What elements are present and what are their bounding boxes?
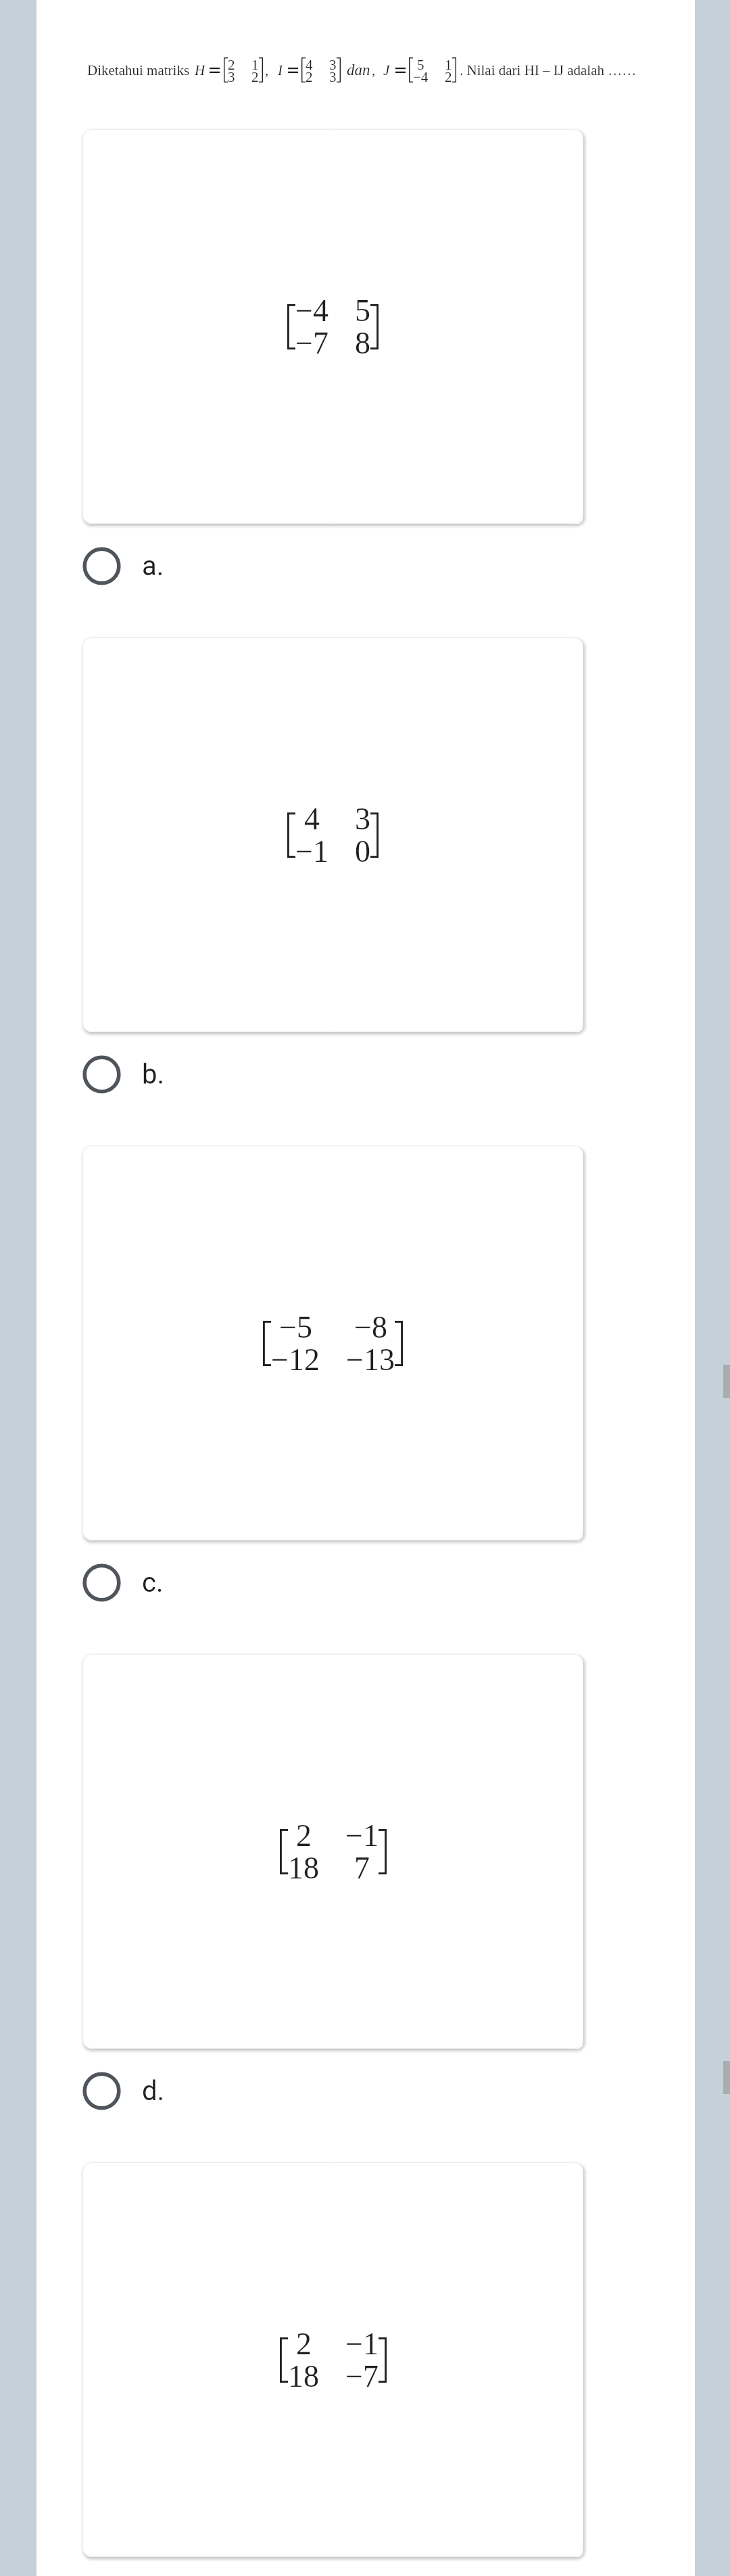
staticText: b. [142, 1059, 165, 1090]
button[interactable]: b. [82, 1044, 366, 1104]
staticText: 18 [288, 2359, 319, 2393]
staticText: −12 [271, 1342, 320, 1377]
staticText: 5 [355, 293, 370, 328]
button[interactable]: Answer option 5 [82, 2162, 583, 2557]
staticText: 8 [355, 326, 370, 360]
staticText: 2 [296, 2327, 312, 2361]
staticText: , [372, 62, 376, 78]
button[interactable]: Answer option 4 [82, 1654, 583, 2049]
staticText: H [195, 62, 205, 78]
staticText: 5 [417, 57, 424, 72]
staticText: 4 [304, 802, 320, 836]
staticText: −7 [295, 326, 328, 360]
staticText: . Nilai dari HI – IJ adalah …… [460, 62, 637, 78]
staticText: 4 [306, 57, 313, 72]
staticText: 1 [251, 57, 259, 72]
staticText: 2 [445, 69, 452, 84]
staticText: 3 [329, 69, 337, 84]
staticText: a. [142, 550, 164, 582]
staticText: −1 [295, 834, 328, 869]
staticText: 2 [306, 69, 313, 84]
staticText: d. [142, 2075, 165, 2107]
staticText: −8 [354, 1310, 387, 1344]
staticText: 2 [228, 57, 235, 72]
staticText: −4 [413, 69, 429, 84]
button[interactable]: Answer option 2 [82, 637, 583, 1032]
button[interactable]: Answer option 1 [82, 129, 583, 524]
staticText: −1 [345, 2327, 379, 2361]
staticText: 0 [355, 834, 370, 869]
staticText: 3 [228, 69, 235, 84]
staticText: , [265, 62, 269, 78]
staticText: 1 [445, 57, 452, 72]
staticText: c. [142, 1567, 164, 1599]
staticText: 3 [355, 802, 370, 836]
staticText: J [383, 62, 390, 78]
button[interactable]: c. [82, 1553, 366, 1612]
button[interactable]: Answer option 3 [82, 1146, 583, 1540]
staticText: dan [347, 62, 370, 78]
button[interactable]: d. [82, 2061, 366, 2120]
staticText: 7 [354, 1851, 370, 1885]
staticText: −5 [279, 1310, 312, 1344]
staticText: −13 [346, 1342, 395, 1377]
staticText: 18 [288, 1851, 319, 1885]
staticText: 3 [329, 57, 337, 72]
staticText: −7 [345, 2359, 379, 2393]
staticText: −4 [295, 293, 328, 328]
button[interactable]: a. [82, 536, 366, 596]
staticText: 2 [251, 69, 259, 84]
staticText: −1 [345, 1818, 379, 1853]
staticText: 2 [296, 1818, 312, 1853]
staticText: Diketahui matriks [87, 62, 190, 78]
staticText: I [278, 62, 283, 78]
